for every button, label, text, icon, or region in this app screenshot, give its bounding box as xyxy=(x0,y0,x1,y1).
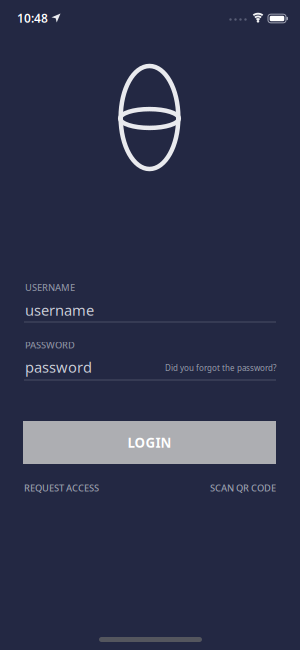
staticText: LOGIN xyxy=(127,434,171,451)
staticText: REQUEST ACCESS xyxy=(24,482,99,494)
button[interactable]: REQUEST ACCESS xyxy=(24,482,99,494)
staticText: PASSWORD xyxy=(25,339,75,351)
button[interactable]: Did you forgot the password? xyxy=(165,363,276,373)
staticText: 10:48 xyxy=(17,10,48,26)
staticText: Did you forgot the password? xyxy=(165,363,276,373)
button[interactable]: LOGIN xyxy=(23,421,276,464)
staticText: SCAN QR CODE xyxy=(210,482,276,494)
staticText: password xyxy=(25,357,92,377)
staticText: username xyxy=(25,300,94,320)
staticText: USERNAME xyxy=(25,281,75,294)
button[interactable]: SCAN QR CODE xyxy=(210,482,276,494)
